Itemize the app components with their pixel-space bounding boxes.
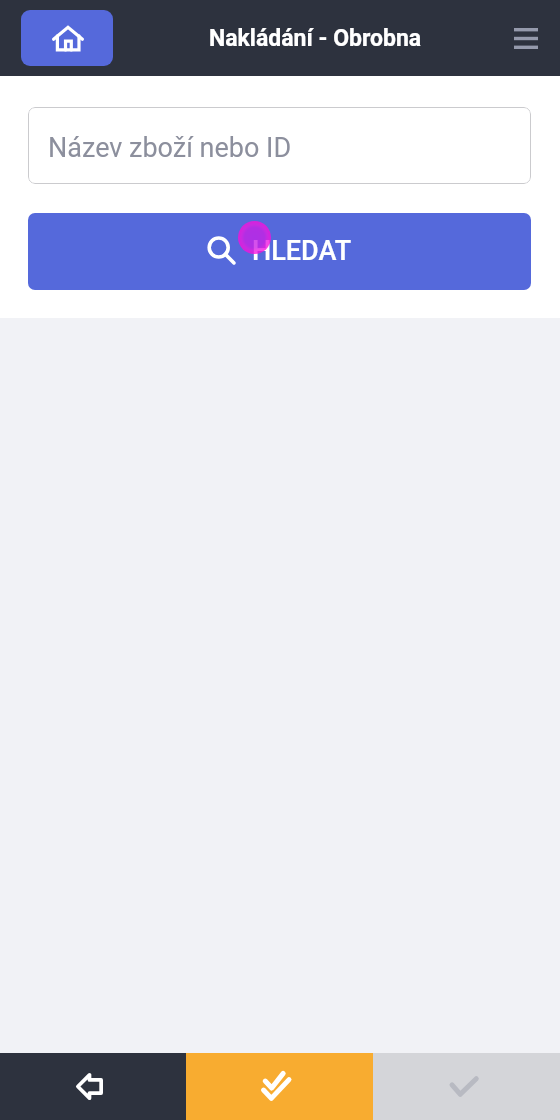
button[interactable]: Home bbox=[21, 10, 113, 66]
button[interactable]: Menu bbox=[500, 12, 552, 64]
staticText: HLEDAT bbox=[252, 235, 352, 267]
button[interactable]: Confirm all bbox=[186, 1053, 373, 1120]
button[interactable]: Back bbox=[0, 1053, 186, 1120]
button[interactable]: Název zboží nebo ID bbox=[28, 107, 531, 184]
button[interactable]: Confirm bbox=[373, 1053, 560, 1120]
staticText: Nakládání - Obrobna bbox=[209, 25, 422, 52]
button[interactable]: HLEDAT bbox=[28, 213, 531, 290]
staticText: Název zboží nebo ID bbox=[48, 132, 292, 164]
